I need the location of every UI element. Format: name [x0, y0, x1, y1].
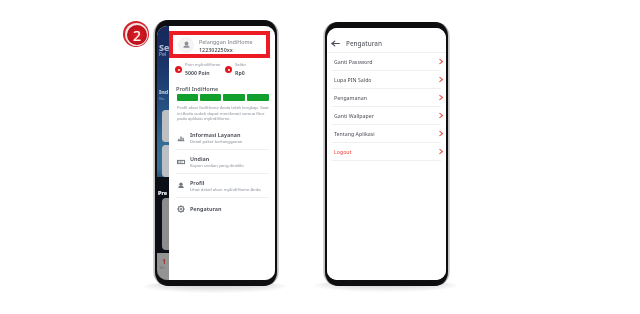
- staticText: 2: [133, 26, 142, 45]
- staticText: Pengaturan: [190, 205, 222, 212]
- staticText: Pelanggan IndiHome: [199, 38, 253, 45]
- staticText: Poin myIndiHome: [185, 62, 221, 68]
- button[interactable]: Ganti Wallpaper: [334, 107, 444, 124]
- staticText: Rp0: [235, 69, 245, 76]
- button[interactable]: Logout: [334, 143, 444, 160]
- staticText: Undian: [190, 155, 210, 162]
- staticText: Pengamanan: [334, 94, 367, 101]
- staticText: Lupa PIN Saldo: [334, 76, 372, 83]
- staticText: No.: [159, 96, 166, 101]
- staticText: Pre: [158, 189, 168, 196]
- staticText: 5000 Poin: [185, 69, 210, 76]
- staticText: Logout: [334, 148, 352, 155]
- staticText: Saldo: [235, 62, 246, 68]
- staticText: 1: [162, 257, 167, 267]
- staticText: Detail paket berlangganan: [190, 139, 243, 145]
- button[interactable]: Ganti Password: [334, 53, 444, 70]
- staticText: Ind: [159, 88, 169, 95]
- staticText: Profil: [190, 179, 205, 186]
- staticText: Pel: [159, 51, 167, 58]
- button[interactable]: Back: [331, 39, 340, 48]
- staticText: Se: [159, 41, 170, 53]
- staticText: Profil IndiHome: [176, 85, 219, 92]
- staticText: Ganti Wallpaper: [334, 112, 374, 119]
- staticText: 122302250xx: [199, 46, 233, 53]
- button[interactable]: Profil: [177, 174, 269, 197]
- button[interactable]: Informasi Layanan: [177, 126, 269, 149]
- button[interactable]: Pengaturan: [177, 198, 269, 219]
- staticText: Kupon undian yang dimiliki: [190, 163, 244, 169]
- staticText: Informasi Layanan: [190, 131, 241, 138]
- staticText: Pengaturan: [346, 39, 382, 48]
- button[interactable]: Tentang Aplikasi: [334, 125, 444, 142]
- staticText: Ganti Password: [334, 58, 373, 65]
- button[interactable]: Undian: [177, 150, 269, 173]
- button[interactable]: Lupa PIN Saldo: [334, 71, 444, 88]
- staticText: Be: [160, 265, 165, 270]
- staticText: Profil akun IndiHome Anda telah lengkap.…: [177, 105, 270, 121]
- button[interactable]: Pengamanan: [334, 89, 444, 106]
- button[interactable]: Pelanggan IndiHome: [178, 36, 266, 54]
- staticText: Lihat detail akun myIndiHome Anda: [190, 187, 261, 193]
- staticText: Tentang Aplikasi: [334, 130, 375, 137]
